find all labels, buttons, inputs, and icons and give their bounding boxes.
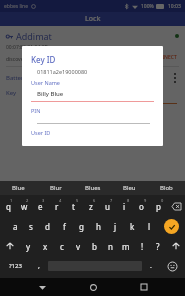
- staticText: a: [13, 221, 18, 232]
- staticText: User Name: [31, 79, 60, 86]
- staticText: ebbes line: [4, 3, 28, 10]
- button[interactable]: b: [86, 236, 102, 256]
- staticText: 1: [10, 198, 13, 203]
- button[interactable]: Shift: [0, 236, 20, 256]
- button[interactable]: Bleu: [111, 181, 148, 195]
- button[interactable]: 3: [32, 197, 48, 216]
- staticText: 01811a2e19000080: [56, 89, 111, 97]
- staticText: x: [43, 241, 48, 252]
- staticText: .: [150, 261, 152, 271]
- button[interactable]: x: [37, 236, 54, 256]
- staticText: 7: [110, 198, 113, 203]
- staticText: !: [141, 241, 144, 252]
- staticText: f: [63, 221, 66, 232]
- staticText: 10:03: [168, 3, 181, 10]
- button[interactable]: n: [102, 236, 118, 256]
- staticText: t: [72, 201, 75, 212]
- staticText: Bleu: [123, 184, 136, 192]
- staticText: ,: [38, 261, 40, 271]
- button[interactable]: v: [70, 236, 86, 256]
- staticText: c: [60, 241, 64, 252]
- staticText: Blue: [12, 184, 25, 192]
- button[interactable]: ?123: [0, 256, 30, 276]
- staticText: y: [26, 241, 31, 252]
- button[interactable]: l: [141, 216, 158, 236]
- button[interactable]: ?: [150, 236, 166, 256]
- staticText: Key ID: [31, 54, 56, 65]
- staticText: m: [122, 241, 130, 252]
- staticText: 6: [93, 198, 96, 203]
- staticText: Blob: [160, 184, 173, 192]
- staticText: q: [6, 201, 11, 212]
- staticText: Key: [6, 89, 17, 97]
- staticText: Addimat: [16, 30, 52, 42]
- staticText: l: [148, 221, 151, 232]
- button[interactable]: 2: [16, 197, 32, 216]
- staticText: 4: [59, 198, 62, 203]
- button[interactable]: Blur: [37, 181, 74, 195]
- staticText: h: [96, 221, 101, 232]
- staticText: User ID: [31, 129, 51, 136]
- button[interactable]: Blob: [148, 181, 185, 195]
- button[interactable]: g: [73, 216, 90, 236]
- button[interactable]: f: [56, 216, 73, 236]
- button[interactable]: 1: [0, 197, 16, 216]
- staticText: 100%: [141, 3, 154, 10]
- staticText: n: [108, 241, 113, 252]
- button[interactable]: c: [54, 236, 70, 256]
- button[interactable]: DISCONNECT: [143, 52, 179, 63]
- button[interactable]: k: [124, 216, 141, 236]
- button[interactable]: !: [134, 236, 150, 256]
- staticText: s: [29, 221, 33, 232]
- staticText: discovered all services: [6, 56, 59, 63]
- staticText: i: [123, 201, 126, 212]
- staticText: u: [105, 201, 110, 212]
- staticText: Battery: [6, 74, 27, 82]
- staticText: o: [139, 201, 144, 212]
- button[interactable]: h: [90, 216, 107, 236]
- staticText: g: [79, 221, 84, 232]
- button[interactable]: Blues: [74, 181, 111, 195]
- staticText: r: [55, 201, 59, 212]
- button[interactable]: 5: [65, 197, 82, 216]
- button[interactable]: m: [118, 236, 134, 256]
- button[interactable]: 7: [99, 197, 116, 216]
- button[interactable]: 4: [48, 197, 65, 216]
- staticText: Lock: [85, 14, 101, 24]
- button[interactable]: Enter: [158, 216, 185, 236]
- staticText: ?123: [9, 262, 22, 270]
- staticText: Blues: [85, 184, 101, 192]
- button[interactable]: Emoji: [160, 256, 185, 276]
- staticText: DISCONNECT: [145, 54, 177, 61]
- staticText: b: [92, 241, 97, 252]
- button[interactable]: a: [7, 216, 23, 236]
- button[interactable]: .: [142, 256, 160, 276]
- button[interactable]: Shift: [166, 236, 185, 256]
- button[interactable]: 9: [133, 197, 150, 216]
- button[interactable]: More options: [171, 70, 179, 86]
- button[interactable]: 8: [116, 197, 133, 216]
- button[interactable]: 6: [82, 197, 99, 216]
- staticText: z: [89, 201, 93, 212]
- button[interactable]: Home: [76, 278, 110, 296]
- button[interactable]: y: [20, 236, 37, 256]
- staticText: p: [156, 201, 161, 212]
- staticText: 3: [42, 198, 45, 203]
- staticText: 5: [76, 198, 79, 203]
- button[interactable]: d: [39, 216, 56, 236]
- staticText: ?: [156, 241, 160, 252]
- button[interactable]: ,: [30, 256, 48, 276]
- staticText: w: [21, 201, 28, 212]
- button[interactable]: Backspace: [167, 197, 185, 216]
- button[interactable]: Blue: [0, 181, 37, 195]
- button[interactable]: Recent apps: [127, 278, 161, 296]
- staticText: 01811a2e19000080: [37, 68, 88, 75]
- button[interactable]: j: [107, 216, 124, 236]
- button[interactable]: s: [23, 216, 39, 236]
- button[interactable]: Back: [25, 278, 59, 296]
- button[interactable]: 0: [150, 197, 167, 216]
- staticText: j: [114, 221, 117, 232]
- staticText: Billy Blue: [37, 90, 64, 98]
